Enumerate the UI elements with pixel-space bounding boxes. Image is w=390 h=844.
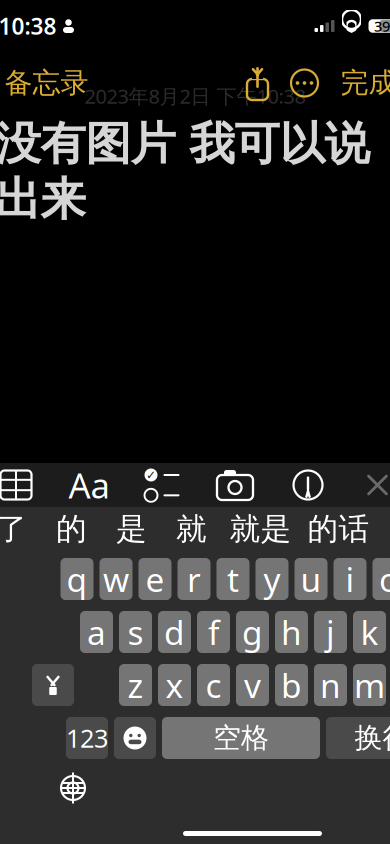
staticText: i: [345, 557, 354, 601]
button[interactable]: 的: [45, 510, 97, 548]
staticText: n: [320, 663, 341, 707]
staticText: s: [127, 610, 143, 654]
button[interactable]: h: [275, 611, 308, 653]
button[interactable]: 就是: [225, 510, 295, 548]
button[interactable]: a: [80, 611, 113, 653]
staticText: 完成: [340, 66, 390, 100]
staticText: y: [263, 557, 280, 601]
button[interactable]: z: [119, 664, 152, 706]
button[interactable]: Table: [0, 463, 48, 507]
button[interactable]: q: [60, 558, 93, 600]
button[interactable]: x: [158, 664, 191, 706]
button[interactable]: 完成: [328, 58, 390, 108]
staticText: g: [242, 610, 263, 654]
button[interactable]: v: [236, 664, 269, 706]
button[interactable]: i: [333, 558, 366, 600]
staticText: o: [379, 557, 390, 601]
staticText: 换行: [354, 721, 390, 755]
staticText: m: [354, 663, 385, 707]
button[interactable]: Format: [56, 463, 121, 507]
button[interactable]: Close keyboard: [348, 463, 390, 507]
staticText: a: [87, 610, 106, 654]
staticText: d: [164, 610, 185, 654]
button[interactable]: e: [138, 558, 171, 600]
button[interactable]: d: [158, 611, 191, 653]
staticText: 就是: [229, 510, 291, 548]
button[interactable]: n: [314, 664, 347, 706]
button[interactable]: 就: [165, 510, 217, 548]
staticText: 39: [374, 16, 390, 36]
staticText: x: [165, 663, 183, 707]
button[interactable]: Camera: [202, 463, 267, 507]
button[interactable]: s: [119, 611, 152, 653]
button[interactable]: More: [280, 61, 328, 105]
staticText: k: [360, 610, 378, 654]
staticText: v: [244, 663, 261, 707]
staticText: z: [127, 663, 143, 707]
button[interactable]: j: [314, 611, 347, 653]
staticText: 了: [0, 510, 27, 548]
button[interactable]: f: [197, 611, 230, 653]
staticText: h: [281, 610, 302, 654]
staticText: 备忘录: [4, 66, 88, 100]
staticText: 是: [116, 510, 147, 548]
button[interactable]: m: [353, 664, 386, 706]
button[interactable]: 换行: [326, 717, 390, 759]
staticText: e: [145, 557, 164, 601]
button[interactable]: b: [275, 664, 308, 706]
button[interactable]: Next keyboard: [45, 765, 101, 811]
button[interactable]: k: [353, 611, 386, 653]
staticText: 的: [56, 510, 87, 548]
button[interactable]: c: [197, 664, 230, 706]
button[interactable]: 备忘录: [0, 58, 88, 108]
staticText: c: [205, 663, 221, 707]
staticText: f: [208, 610, 219, 654]
button[interactable]: 123: [66, 717, 108, 759]
button[interactable]: Checklist: [129, 463, 194, 507]
staticText: ✓: [146, 468, 156, 482]
button[interactable]: Share: [234, 61, 280, 105]
staticText: 没有图片 我可以说出来: [0, 116, 369, 227]
button[interactable]: o: [372, 558, 390, 600]
staticText: 2023年8月2日 下午10:38: [84, 83, 305, 109]
staticText: 空格: [213, 721, 269, 755]
staticText: b: [281, 663, 302, 707]
staticText: 123: [66, 721, 108, 755]
staticText: u: [300, 557, 321, 601]
button[interactable]: g: [236, 611, 269, 653]
button[interactable]: u: [294, 558, 327, 600]
staticText: 的话: [307, 510, 369, 548]
button[interactable]: y: [255, 558, 288, 600]
staticText: Aa: [68, 462, 109, 508]
button[interactable]: Markup: [275, 463, 340, 507]
staticText: w: [103, 557, 129, 601]
button[interactable]: 是: [105, 510, 157, 548]
button[interactable]: Shift: [32, 664, 74, 706]
button[interactable]: 了: [0, 510, 37, 548]
button[interactable]: 的话: [303, 510, 373, 548]
staticText: j: [326, 610, 335, 654]
button[interactable]: 空格: [162, 717, 320, 759]
staticText: 就: [176, 510, 207, 548]
button[interactable]: w: [99, 558, 132, 600]
button[interactable]: r: [177, 558, 210, 600]
staticText: q: [66, 557, 87, 601]
staticText: r: [187, 557, 201, 601]
button[interactable]: Emoji: [114, 717, 156, 759]
button[interactable]: t: [216, 558, 249, 600]
staticText: 10:38: [0, 11, 56, 41]
staticText: t: [227, 557, 239, 601]
